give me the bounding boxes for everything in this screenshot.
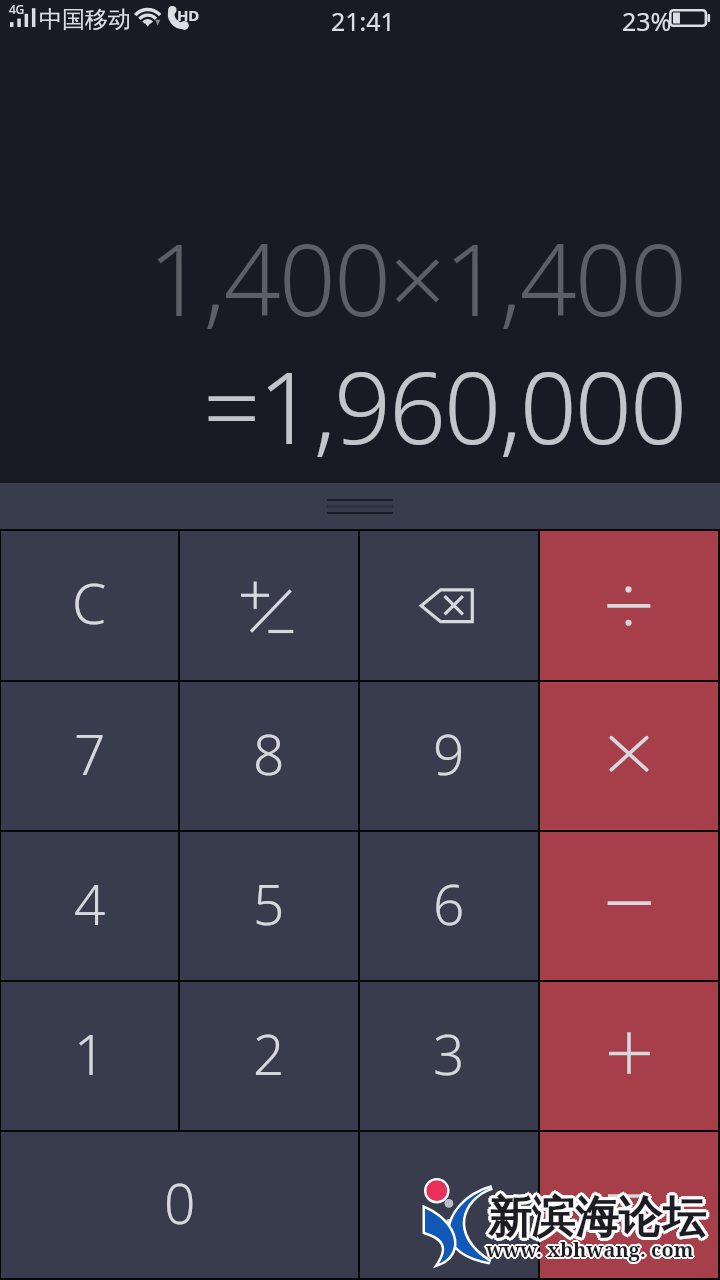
staticText: www. xbhwang. com bbox=[488, 1236, 696, 1263]
staticText: 0 bbox=[164, 1165, 196, 1240]
staticText: 新滨海论坛 bbox=[486, 1192, 704, 1247]
staticText: 7 bbox=[74, 716, 106, 791]
button[interactable]: 6 bbox=[360, 832, 538, 980]
staticText: C bbox=[72, 565, 107, 640]
staticText: 6 bbox=[433, 866, 465, 941]
staticText: 2 bbox=[253, 1016, 285, 1091]
button[interactable]: 8 bbox=[180, 682, 358, 830]
staticText: www. xbhwang. com bbox=[486, 1236, 694, 1263]
staticText: 23% bbox=[622, 4, 672, 38]
staticText: 5 bbox=[253, 866, 285, 941]
button[interactable]: . bbox=[360, 1132, 538, 1278]
staticText: www. xbhwang. com bbox=[487, 1235, 695, 1262]
staticText: www. xbhwang. com bbox=[484, 1236, 692, 1263]
staticText: 新滨海论坛 bbox=[491, 1190, 709, 1245]
button[interactable]: Backspace bbox=[360, 531, 538, 680]
staticText: 21:41 bbox=[331, 4, 395, 38]
button[interactable]: Divide bbox=[540, 531, 718, 680]
staticText: www. xbhwang. com bbox=[485, 1237, 693, 1264]
staticText: www. xbhwang. com bbox=[486, 1234, 694, 1261]
staticText: www. xbhwang. com bbox=[485, 1235, 693, 1262]
staticText: 新滨海论坛 bbox=[490, 1192, 708, 1247]
staticText: 中国移动 bbox=[39, 5, 131, 34]
staticText: 新滨海论坛 bbox=[490, 1188, 708, 1243]
button[interactable]: 1 bbox=[1, 982, 178, 1130]
staticText: 新滨海论坛 bbox=[485, 1190, 703, 1245]
staticText: 新滨海论坛 bbox=[488, 1190, 706, 1245]
button[interactable]: Multiply bbox=[540, 682, 718, 830]
button[interactable]: Drag handle bbox=[0, 483, 720, 529]
button[interactable]: 3 bbox=[360, 982, 538, 1130]
staticText: HD bbox=[177, 5, 200, 25]
button[interactable]: 9 bbox=[360, 682, 538, 830]
button[interactable]: 0 bbox=[1, 1132, 358, 1278]
staticText: 新滨海论坛 bbox=[486, 1188, 704, 1243]
staticText: =1,960,000 bbox=[0, 337, 685, 473]
button[interactable]: 4 bbox=[1, 832, 178, 980]
staticText: 3 bbox=[433, 1016, 465, 1091]
staticText: 9 bbox=[433, 716, 465, 791]
staticText: 新滨海论坛 bbox=[488, 1193, 706, 1248]
button[interactable]: 5 bbox=[180, 832, 358, 980]
staticText: www. xbhwang. com bbox=[486, 1238, 694, 1265]
button[interactable]: Plus bbox=[540, 982, 718, 1130]
staticText: 新滨海论坛 bbox=[488, 1187, 706, 1242]
staticText: www. xbhwang. com bbox=[487, 1237, 695, 1264]
button[interactable]: C bbox=[1, 531, 178, 680]
button[interactable]: Plus minus bbox=[180, 531, 358, 680]
staticText: . bbox=[442, 1165, 456, 1240]
staticText: 4 bbox=[74, 866, 106, 941]
button[interactable]: Equals bbox=[540, 1132, 718, 1278]
staticText: 1,400×1,400 bbox=[0, 209, 685, 345]
staticText: 8 bbox=[253, 716, 285, 791]
staticText: 4G bbox=[9, 1, 24, 17]
button[interactable]: 2 bbox=[180, 982, 358, 1130]
staticText: 1 bbox=[74, 1016, 106, 1091]
button[interactable]: Minus bbox=[540, 832, 718, 980]
button[interactable]: 7 bbox=[1, 682, 178, 830]
